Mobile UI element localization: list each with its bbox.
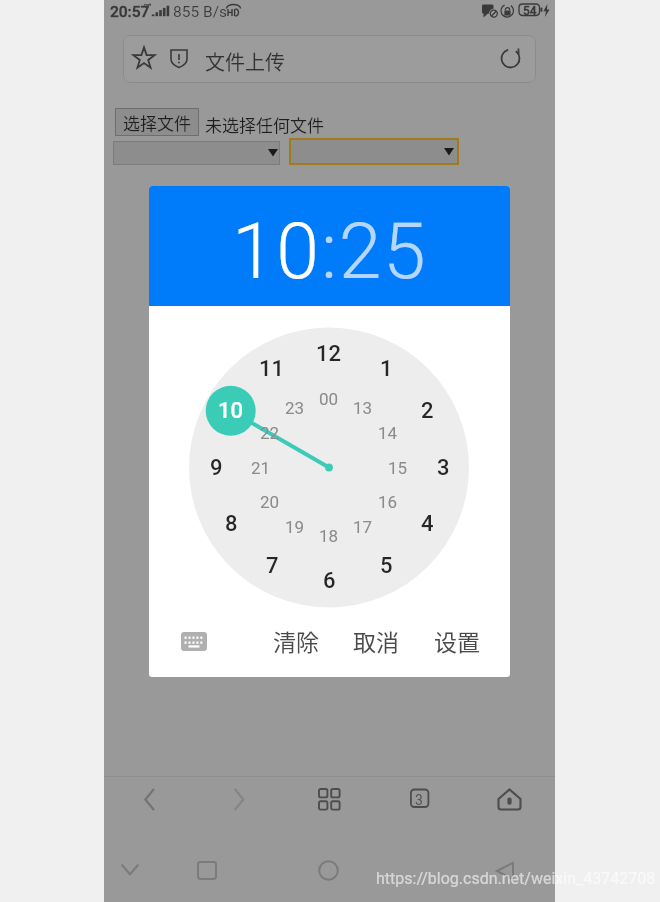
staticText: 20 <box>260 492 280 512</box>
staticText: 11 <box>259 356 285 382</box>
staticText: :25 <box>321 207 428 297</box>
staticText: 14 <box>378 423 398 443</box>
staticText: 855 B/s <box>173 3 228 21</box>
staticText: 13 <box>353 398 373 418</box>
staticText: 文件上传 <box>205 47 285 76</box>
button[interactable]: 3 <box>421 450 465 486</box>
button[interactable]: 清除 <box>263 618 329 663</box>
staticText: 16 <box>378 492 398 512</box>
button[interactable]: Navigation <box>105 848 155 892</box>
button[interactable]: Navigation <box>479 845 532 897</box>
staticText: 取消 <box>353 624 399 657</box>
staticText: 8 <box>225 511 238 537</box>
staticText: 54 <box>523 4 537 18</box>
button[interactable]: 设置 <box>424 618 490 663</box>
button[interactable]: 5 <box>364 548 408 584</box>
button[interactable]: 7 <box>250 548 294 584</box>
staticText: 12 <box>316 341 342 367</box>
staticText: 15 <box>388 458 408 478</box>
staticText: 5 <box>380 553 393 579</box>
staticText: 23 <box>285 398 305 418</box>
staticText: 2 <box>421 398 434 424</box>
button[interactable]: Navigation <box>181 845 233 896</box>
button[interactable]: 1 <box>364 351 408 387</box>
button[interactable]: 21 <box>241 453 281 483</box>
button[interactable]: Back <box>130 774 170 824</box>
button[interactable]: 13 <box>343 393 383 423</box>
button[interactable]: Reload <box>500 48 523 71</box>
staticText: 17 <box>353 517 373 537</box>
button[interactable]: Home <box>485 774 535 824</box>
button[interactable]: 12 <box>307 336 351 372</box>
button[interactable]: 2 <box>405 393 449 429</box>
button[interactable]: 9 <box>194 450 238 486</box>
staticText: 18 <box>319 526 339 546</box>
button[interactable]: 22 <box>250 418 290 448</box>
button[interactable]: 23 <box>275 393 315 423</box>
button[interactable]: 15 <box>378 453 418 483</box>
staticText: 10 <box>232 207 321 297</box>
button[interactable]: 16 <box>368 487 408 517</box>
staticText: 9 <box>210 455 223 481</box>
button[interactable]: :25 <box>321 207 428 297</box>
staticText: 22 <box>260 423 280 443</box>
button[interactable]: Dropdown <box>289 138 459 165</box>
button[interactable]: Address bar <box>123 35 536 83</box>
button[interactable]: Navigation <box>302 844 355 897</box>
staticText: 未选择任何文件 <box>205 112 324 137</box>
button[interactable]: 10 <box>209 393 253 429</box>
staticText: https://blog.csdn.net/weixin_43742708 <box>376 869 656 888</box>
button[interactable]: Tabs <box>398 774 443 824</box>
button[interactable]: 8 <box>209 506 253 542</box>
staticText: 6 <box>323 568 336 594</box>
button[interactable]: Forward <box>220 774 260 824</box>
button[interactable]: 20 <box>250 487 290 517</box>
staticText: 4 <box>421 511 434 537</box>
button[interactable]: Keyboard input <box>175 628 213 654</box>
button[interactable]: 18 <box>309 521 349 551</box>
staticText: 3 <box>415 792 423 808</box>
button[interactable]: 00 <box>309 384 349 414</box>
staticText: 00 <box>319 389 339 409</box>
button[interactable]: 17 <box>343 512 383 542</box>
staticText: 7 <box>266 553 279 579</box>
button[interactable]: 10 <box>232 207 321 297</box>
button[interactable]: 14 <box>368 418 408 448</box>
button[interactable]: 6 <box>307 563 351 599</box>
staticText: 10 <box>218 398 244 424</box>
staticText: 设置 <box>434 624 480 657</box>
button[interactable]: 选择文件 <box>115 108 199 136</box>
staticText: 3 <box>437 455 450 481</box>
button[interactable]: 19 <box>275 512 315 542</box>
button[interactable]: 11 <box>250 351 294 387</box>
staticText: 21 <box>251 458 271 478</box>
staticText: 清除 <box>273 624 319 657</box>
button[interactable]: Apps <box>307 775 353 823</box>
staticText: 1 <box>380 356 393 382</box>
button[interactable]: 4 <box>405 506 449 542</box>
staticText: 选择文件 <box>123 110 191 135</box>
staticText: 19 <box>285 517 305 537</box>
staticText: 20:57 <box>110 3 150 21</box>
button[interactable]: Dropdown <box>113 141 280 165</box>
button[interactable]: 取消 <box>343 618 409 663</box>
